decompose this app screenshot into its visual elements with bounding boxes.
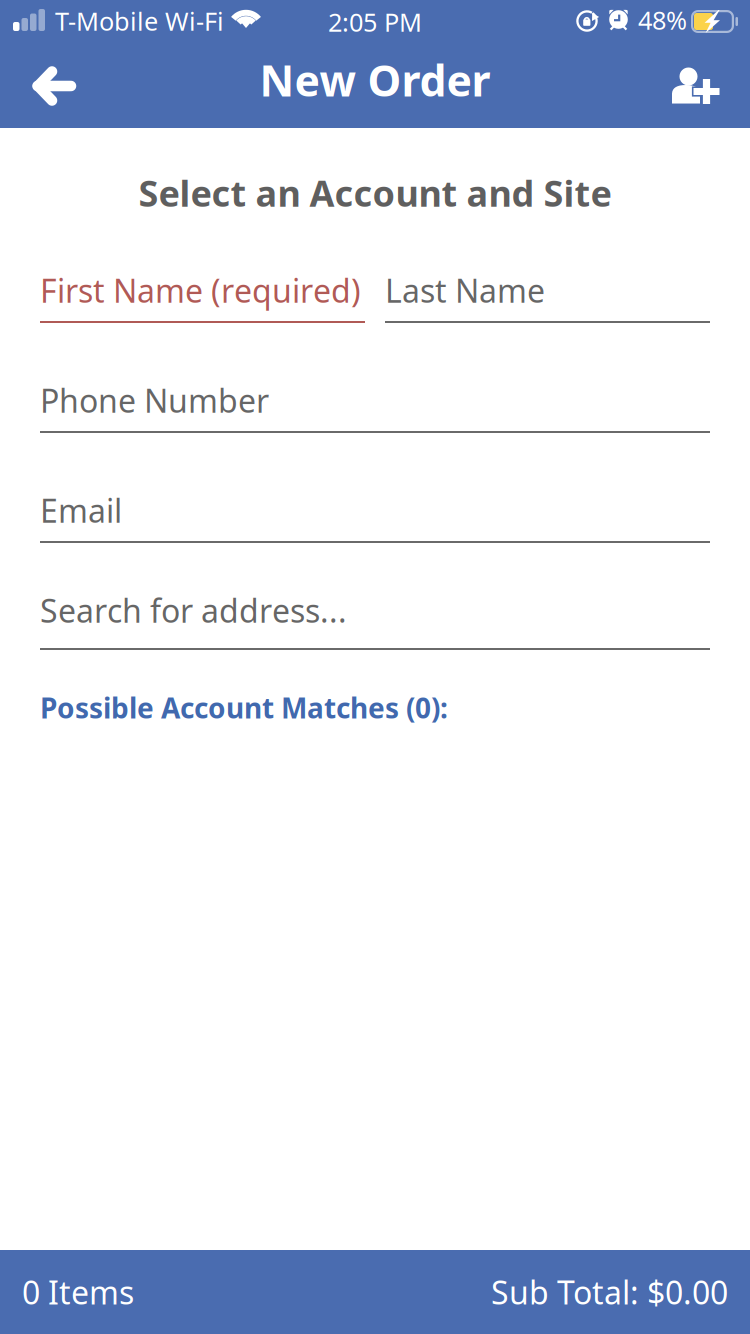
button[interactable]: Back — [12, 44, 96, 128]
staticText: Select an Account and Site — [138, 169, 611, 217]
button[interactable]: Phone Number — [40, 387, 710, 433]
staticText: T-Mobile Wi-Fi — [55, 4, 224, 38]
staticText: Last Name — [385, 269, 545, 311]
staticText: Possible Account Matches (0): — [40, 689, 448, 726]
staticText: Email — [40, 489, 122, 531]
staticText: Search for address... — [40, 589, 347, 631]
button[interactable]: Add account — [654, 44, 738, 128]
staticText: Phone Number — [40, 379, 269, 421]
staticText: 48% — [638, 3, 687, 37]
button[interactable]: Last Name — [385, 277, 710, 323]
staticText: First Name (required) — [40, 269, 361, 311]
staticText: Sub Total: $0.00 — [491, 1271, 728, 1313]
staticText: New Order — [259, 52, 490, 108]
staticText: 0 Items — [22, 1271, 134, 1313]
button[interactable]: First Name (required) — [40, 277, 365, 323]
staticText: 2:05 PM — [328, 5, 422, 39]
button[interactable]: 0 Items — [22, 1250, 134, 1334]
button[interactable]: Email — [40, 497, 710, 543]
button[interactable]: Sub Total: $0.00 — [491, 1250, 728, 1334]
button[interactable]: Search for address... — [40, 604, 710, 650]
